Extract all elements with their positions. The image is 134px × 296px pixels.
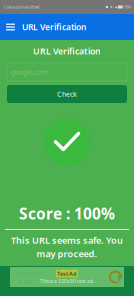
staticText: URL Verification: [33, 45, 101, 57]
staticText: ◂: [115, 4, 117, 10]
button[interactable]: Check: [7, 85, 127, 103]
button[interactable]: Menu: [3, 19, 18, 35]
staticText: Check: [57, 89, 77, 99]
staticText: This is a 320x50 test ad.: [40, 278, 94, 284]
staticText: This URL seems safe. You: [11, 234, 123, 246]
staticText: Test Ad: [57, 270, 77, 277]
button[interactable]: Nice job!: [0, 266, 134, 287]
staticText: Coloured mob 09:44: [4, 4, 39, 10]
staticText: may proceed.: [36, 247, 97, 260]
staticText: Score : 100%: [19, 203, 115, 224]
staticText: google.com: [11, 67, 48, 77]
staticText: 99%: [124, 4, 131, 10]
staticText: URL Verification: [22, 21, 86, 33]
staticText: ✶: [109, 4, 113, 10]
